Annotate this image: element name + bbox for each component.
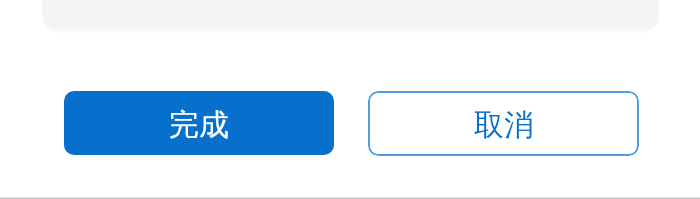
staticText: 完成 <box>169 106 229 144</box>
button[interactable]: 取消 <box>368 91 639 156</box>
button[interactable]: 完成 <box>64 91 334 155</box>
staticText: 取消 <box>474 106 534 144</box>
